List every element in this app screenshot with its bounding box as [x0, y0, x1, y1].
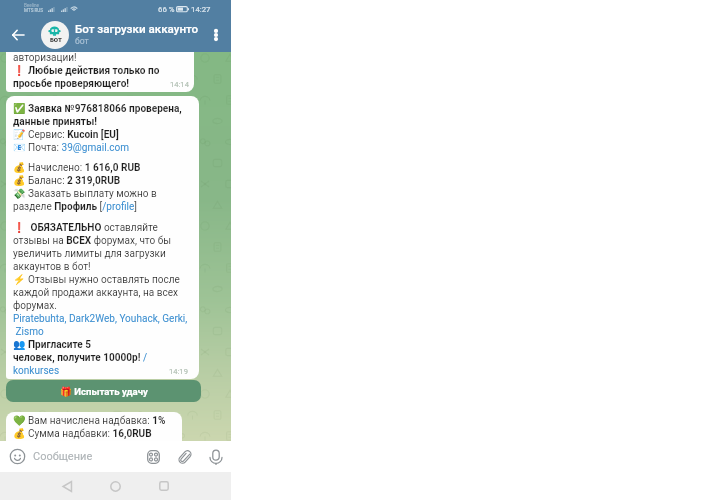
button[interactable]: More options [205, 24, 227, 46]
button[interactable]: Profile photo [41, 21, 69, 49]
staticText: авторизации! ❗ Любые действия только по … [13, 52, 160, 89]
button[interactable]: Stickers [142, 445, 165, 468]
button[interactable]: авторизации! ❗ Любые действия только по … [6, 52, 194, 92]
staticText: Beeline [24, 3, 39, 8]
button[interactable]: ✅ Заявка №976818066 проверена, данные пр… [6, 96, 199, 379]
staticText: Бот загрузки аккаунто [75, 22, 199, 36]
staticText: ❗ ОБЯЗАТЕЛЬНО оставляйте отзывы на ВСЕХ … [13, 222, 188, 376]
button[interactable]: 💚 Вам начислена надбавка: 1% 💰 Сумма над… [6, 412, 182, 441]
staticText: 66 % [158, 5, 175, 14]
staticText: БOT [50, 36, 62, 43]
staticText: бот [75, 36, 89, 46]
button[interactable]: Emoji [6, 445, 29, 468]
staticText: 💚 Вам начислена надбавка: 1% 💰 Сумма над… [13, 415, 166, 439]
staticText: 14:27 [191, 5, 211, 14]
staticText: MTS RUS [24, 8, 44, 13]
staticText: 🎁 Испытать удачу [60, 386, 148, 397]
button[interactable]: 🎁 Испытать удачу [6, 380, 201, 402]
staticText: 14:14 [170, 80, 189, 89]
button[interactable]: Recent apps [151, 473, 177, 499]
button[interactable]: Home [102, 473, 128, 499]
staticText: 💰 Начислено: 1 616,0 RUB 💰 Баланс: 2 319… [13, 162, 157, 212]
button[interactable]: Attach file [173, 445, 196, 468]
button[interactable]: Back [54, 473, 80, 499]
staticText: 14:19 [169, 367, 188, 376]
button[interactable]: Voice message [204, 445, 227, 468]
staticText: ✅ Заявка №976818066 проверена, данные пр… [13, 103, 182, 153]
button[interactable]: Бот загрузки аккаунто [75, 22, 202, 46]
button[interactable]: Back [4, 21, 32, 49]
staticText: Сообщение [33, 450, 93, 463]
button[interactable]: Сообщение [33, 450, 93, 463]
